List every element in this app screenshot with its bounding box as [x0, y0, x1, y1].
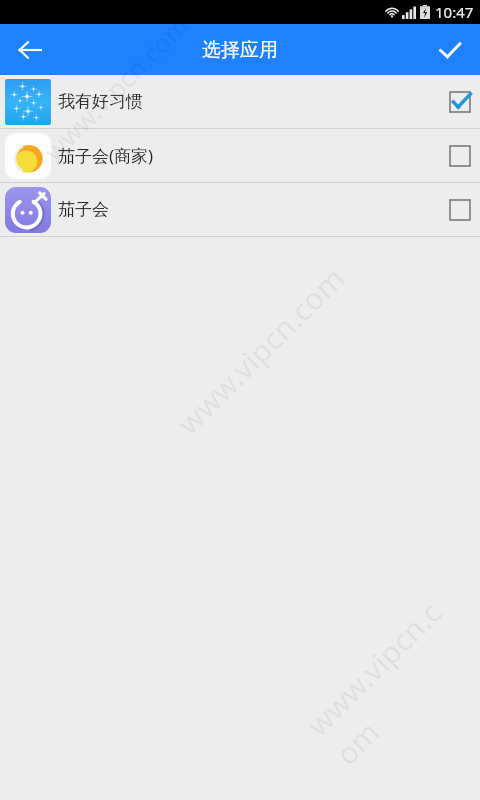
staticText: 茄子会(商家) — [58, 144, 154, 167]
staticText: www.vipcn.com — [36, 7, 196, 168]
button[interactable]: Confirm — [426, 26, 474, 74]
button[interactable]: 茄子会(商家) — [0, 129, 480, 182]
button[interactable]: Back — [6, 26, 54, 74]
staticText: 10:47 — [435, 2, 474, 22]
staticText: 茄子会 — [58, 199, 109, 220]
staticText: 选择应用 — [202, 38, 278, 62]
button[interactable]: 茄子会 — [0, 183, 480, 236]
button[interactable]: 我有好习惯 — [0, 75, 480, 128]
staticText: 我有好习惯 — [58, 91, 143, 112]
